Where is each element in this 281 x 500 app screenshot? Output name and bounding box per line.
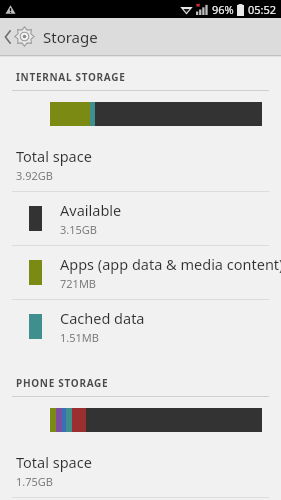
staticText: Cached data <box>60 308 145 328</box>
staticText: 05:52 <box>248 2 277 17</box>
staticText: PHONE STORAGE <box>16 376 109 390</box>
button[interactable]: Apps (app data & media content) <box>0 246 281 299</box>
staticText: Storage <box>43 27 98 47</box>
staticText: Apps (app data & media content) <box>60 254 281 274</box>
button[interactable]: Total space <box>0 444 281 497</box>
staticText: Total space <box>16 452 92 472</box>
staticText: 3.15GB <box>60 222 97 237</box>
button[interactable]: Total space <box>0 138 281 191</box>
staticText: 3.92GB <box>16 168 53 183</box>
staticText: 96% <box>212 2 234 17</box>
staticText: Available <box>60 200 122 220</box>
staticText: 1.51MB <box>60 330 99 345</box>
button[interactable]: Available <box>0 192 281 245</box>
button[interactable]: Navigate up <box>0 18 112 55</box>
staticText: 721MB <box>60 276 97 291</box>
button[interactable]: Cached data <box>0 300 281 353</box>
staticText: INTERNAL STORAGE <box>16 70 126 84</box>
staticText: Total space <box>16 146 92 166</box>
staticText: 1.75GB <box>16 474 53 489</box>
